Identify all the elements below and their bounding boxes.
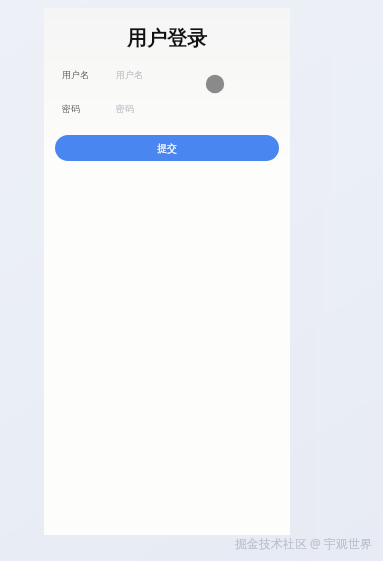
staticText: 密码 [116, 103, 134, 114]
staticText: 密码 [62, 103, 80, 114]
staticText: 用户名 [116, 69, 143, 80]
button[interactable]: 密码 [44, 99, 290, 117]
staticText: 用户登录 [127, 26, 207, 51]
button[interactable]: 用户名 [44, 65, 290, 83]
button[interactable]: 提交 [55, 135, 279, 161]
staticText: 用户名 [62, 69, 89, 80]
staticText: 提交 [157, 142, 177, 155]
button[interactable]: 头像 [205, 74, 225, 94]
staticText: 掘金技术社区 @ 宇观世界 [235, 535, 373, 551]
